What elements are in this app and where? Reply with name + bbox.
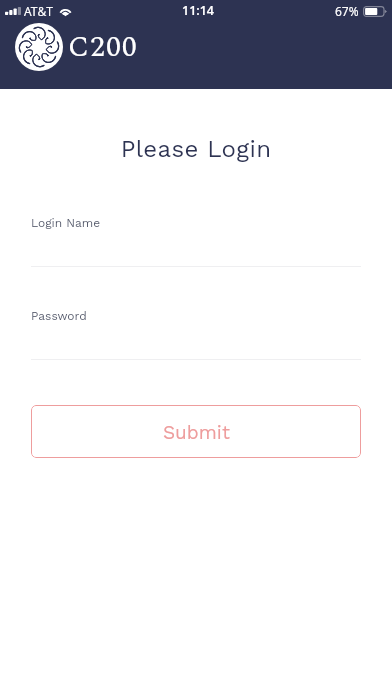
- staticText: 11:14: [182, 2, 214, 19]
- staticText: Login Name: [31, 216, 101, 230]
- staticText: Submit: [163, 421, 230, 443]
- staticText: AT&T: [24, 3, 53, 19]
- staticText: C200: [68, 25, 138, 69]
- staticText: Please Login: [0, 135, 392, 163]
- staticText: Password: [31, 309, 87, 323]
- button[interactable]: Password: [31, 309, 361, 360]
- staticText: 67%: [335, 3, 359, 19]
- other: Wi-Fi: [59, 7, 72, 16]
- button[interactable]: Submit: [31, 405, 361, 458]
- other: Battery: [363, 6, 387, 17]
- button[interactable]: Login Name: [31, 216, 361, 267]
- other: C200 logo: [15, 23, 63, 71]
